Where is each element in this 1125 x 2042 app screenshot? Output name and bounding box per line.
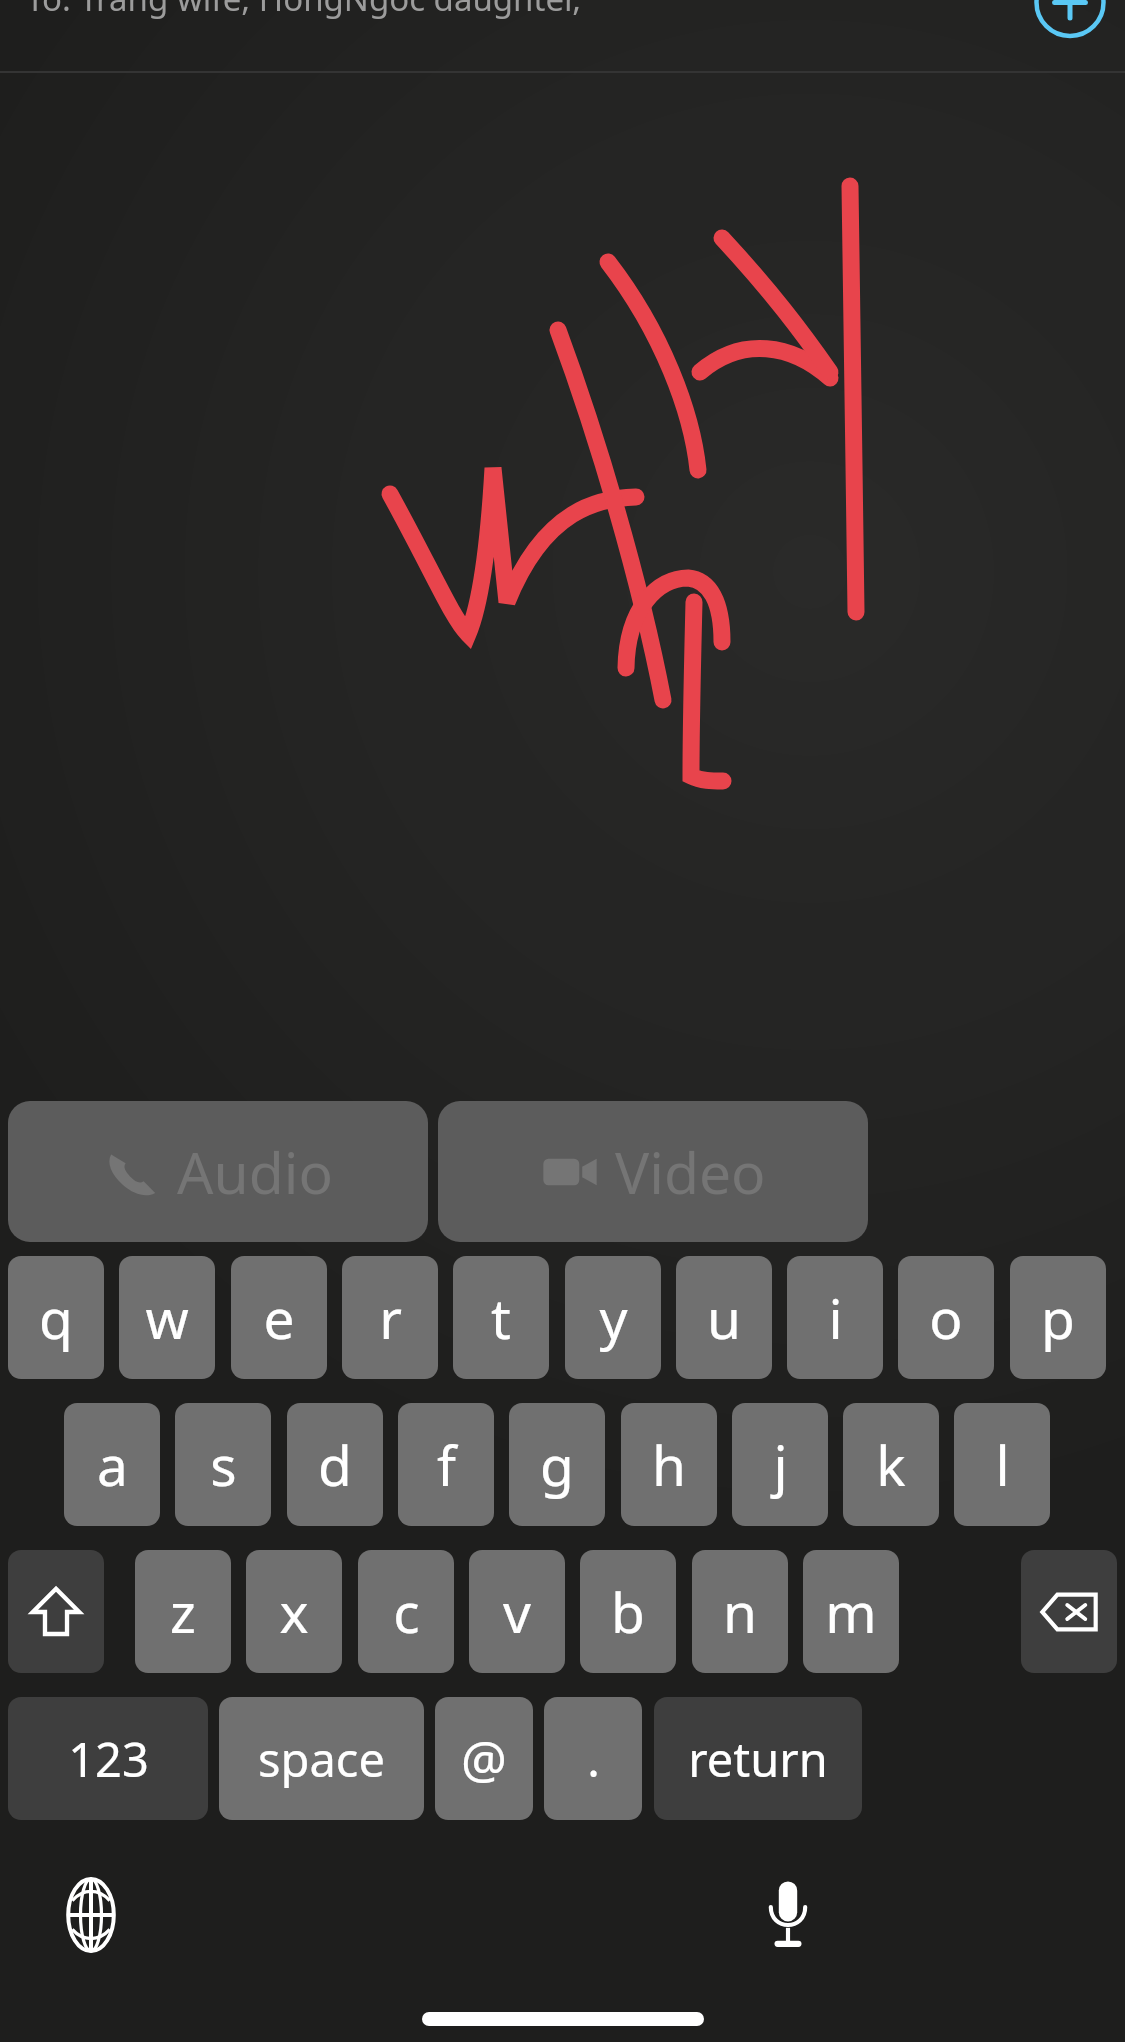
button[interactable]: i: [787, 1256, 883, 1379]
button[interactable]: o: [898, 1256, 994, 1379]
staticText: k: [876, 1427, 906, 1502]
button[interactable]: Backspace: [1021, 1550, 1117, 1673]
staticText: j: [773, 1427, 788, 1502]
button[interactable]: w: [119, 1256, 215, 1379]
button[interactable]: .: [544, 1697, 642, 1820]
button[interactable]: x: [246, 1550, 342, 1673]
button[interactable]: Add recipient: [1031, 0, 1109, 39]
staticText: a: [97, 1427, 128, 1502]
button[interactable]: q: [8, 1256, 104, 1379]
button[interactable]: n: [692, 1550, 788, 1673]
button[interactable]: @: [435, 1697, 533, 1820]
button[interactable]: j: [732, 1403, 828, 1526]
button[interactable]: m: [803, 1550, 899, 1673]
staticText: y: [599, 1280, 628, 1355]
button[interactable]: k: [843, 1403, 939, 1526]
button[interactable]: Video: [438, 1101, 868, 1242]
staticText: b: [611, 1574, 645, 1649]
staticText: o: [929, 1280, 963, 1355]
staticText: return: [688, 1727, 828, 1791]
staticText: Audio: [177, 1133, 333, 1211]
button[interactable]: e: [231, 1256, 327, 1379]
staticText: s: [210, 1427, 237, 1502]
staticText: e: [263, 1280, 295, 1355]
button[interactable]: g: [509, 1403, 605, 1526]
staticText: space: [258, 1727, 385, 1791]
staticText: 123: [68, 1727, 149, 1791]
staticText: i: [828, 1280, 843, 1355]
button[interactable]: h: [621, 1403, 717, 1526]
staticText: v: [503, 1574, 531, 1649]
button[interactable]: r: [342, 1256, 438, 1379]
staticText: q: [39, 1280, 73, 1355]
staticText: m: [825, 1574, 877, 1649]
staticText: .: [587, 1727, 600, 1791]
staticText: u: [707, 1280, 741, 1355]
button[interactable]: return: [654, 1697, 862, 1820]
button[interactable]: Shift: [8, 1550, 104, 1673]
staticText: g: [540, 1427, 574, 1502]
staticText: d: [318, 1427, 352, 1502]
staticText: @: [461, 1724, 507, 1793]
staticText: x: [279, 1574, 309, 1649]
staticText: w: [145, 1280, 189, 1355]
button[interactable]: f: [398, 1403, 494, 1526]
button[interactable]: d: [287, 1403, 383, 1526]
button[interactable]: space: [219, 1697, 424, 1820]
staticText: Video: [615, 1133, 766, 1211]
button[interactable]: p: [1010, 1256, 1106, 1379]
staticText: p: [1041, 1280, 1075, 1355]
staticText: c: [393, 1574, 420, 1649]
button[interactable]: t: [453, 1256, 549, 1379]
button[interactable]: Audio: [8, 1101, 428, 1242]
button[interactable]: 123: [8, 1697, 208, 1820]
staticText: t: [491, 1280, 511, 1355]
button[interactable]: b: [580, 1550, 676, 1673]
staticText: l: [995, 1427, 1010, 1502]
staticText: z: [170, 1574, 196, 1649]
button[interactable]: Dictation: [745, 1872, 831, 1958]
button[interactable]: l: [954, 1403, 1050, 1526]
button[interactable]: u: [676, 1256, 772, 1379]
button[interactable]: z: [135, 1550, 231, 1673]
button[interactable]: c: [358, 1550, 454, 1673]
button[interactable]: v: [469, 1550, 565, 1673]
button[interactable]: Change keyboard language: [48, 1872, 134, 1958]
button[interactable]: s: [175, 1403, 271, 1526]
staticText: f: [437, 1427, 456, 1502]
staticText: To: Trang wife, HongNgoc daughter,: [26, 0, 582, 21]
staticText: n: [723, 1574, 757, 1649]
button[interactable]: y: [565, 1256, 661, 1379]
staticText: h: [652, 1427, 686, 1502]
staticText: r: [379, 1280, 402, 1355]
button[interactable]: a: [64, 1403, 160, 1526]
